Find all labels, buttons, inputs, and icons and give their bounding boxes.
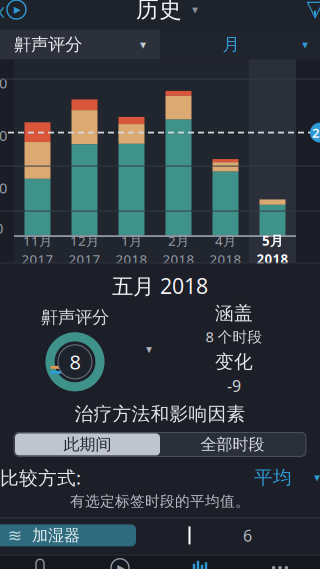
button[interactable]: ▶ xyxy=(80,555,160,569)
staticText: 2018 xyxy=(162,250,194,268)
staticText: 全部时段 xyxy=(200,435,264,454)
staticText: 1月 xyxy=(121,232,142,249)
staticText: 12月 xyxy=(70,232,99,249)
button[interactable]: 返回结果 xyxy=(0,0,36,30)
button[interactable]: 鼾声评分 xyxy=(0,30,160,60)
button[interactable]: 更多 xyxy=(240,555,320,569)
button[interactable]: 记录 xyxy=(0,555,80,569)
button[interactable]: 全部时段 xyxy=(160,433,305,455)
staticText: 30 xyxy=(0,73,7,93)
staticText: 2018 xyxy=(209,250,241,268)
staticText: 2月 xyxy=(168,232,189,249)
staticText: 涵盖 xyxy=(215,302,253,325)
staticText: 治疗方法和影响因素 xyxy=(74,402,245,425)
staticText: 4月 xyxy=(215,232,236,249)
staticText: ≋ xyxy=(7,526,22,545)
staticText: 2017 xyxy=(21,250,53,268)
staticText: ▾ xyxy=(314,471,320,484)
staticText: ‹ xyxy=(0,0,5,27)
button[interactable]: 平均 xyxy=(254,464,320,490)
staticText: 鼾声评分 xyxy=(41,306,109,328)
button[interactable]: 选择指标 xyxy=(134,336,164,362)
staticText: 历史 xyxy=(136,0,182,23)
button[interactable]: ≋ xyxy=(0,524,136,546)
staticText: 2017 xyxy=(68,250,100,268)
button[interactable]: 筛选 xyxy=(298,0,320,30)
button[interactable]: 月 xyxy=(160,30,320,60)
staticText: 23 xyxy=(312,124,320,141)
staticText: 加湿器 xyxy=(32,526,80,545)
staticText: 20 xyxy=(0,125,7,145)
staticText: ▶ xyxy=(117,562,124,569)
staticText: 月 xyxy=(222,34,239,55)
button[interactable]: 趋势 xyxy=(160,555,240,569)
staticText: 11月 xyxy=(23,232,52,249)
staticText: 6 xyxy=(243,525,252,546)
staticText: 0 xyxy=(0,218,3,238)
staticText: 五月 2018 xyxy=(112,272,208,300)
staticText: 有选定标签时段的平均值。 xyxy=(70,492,250,510)
staticText: 比较方式: xyxy=(0,465,81,490)
staticText: 鼾声评分 xyxy=(14,34,82,55)
staticText: ▾ xyxy=(302,38,308,51)
staticText: 8 个时段 xyxy=(205,327,262,346)
button[interactable]: 此期间 xyxy=(15,433,160,455)
staticText: 10 xyxy=(0,178,7,197)
button[interactable]: 历史 xyxy=(136,0,198,30)
staticText: 8 xyxy=(69,349,80,375)
staticText: 此期间 xyxy=(63,435,111,454)
staticText: 5月 xyxy=(262,232,283,249)
staticText: ▽ xyxy=(306,0,320,21)
staticText: 变化 xyxy=(215,350,253,373)
staticText: ▾ xyxy=(146,342,152,356)
staticText: 2018 xyxy=(256,250,288,268)
staticText: 2018 xyxy=(115,250,147,268)
staticText: 平均 xyxy=(254,466,292,489)
staticText: ▶ xyxy=(14,4,21,15)
staticText: ▾ xyxy=(140,38,146,51)
staticText: -9 xyxy=(227,375,241,396)
staticText: ▾ xyxy=(192,3,198,16)
